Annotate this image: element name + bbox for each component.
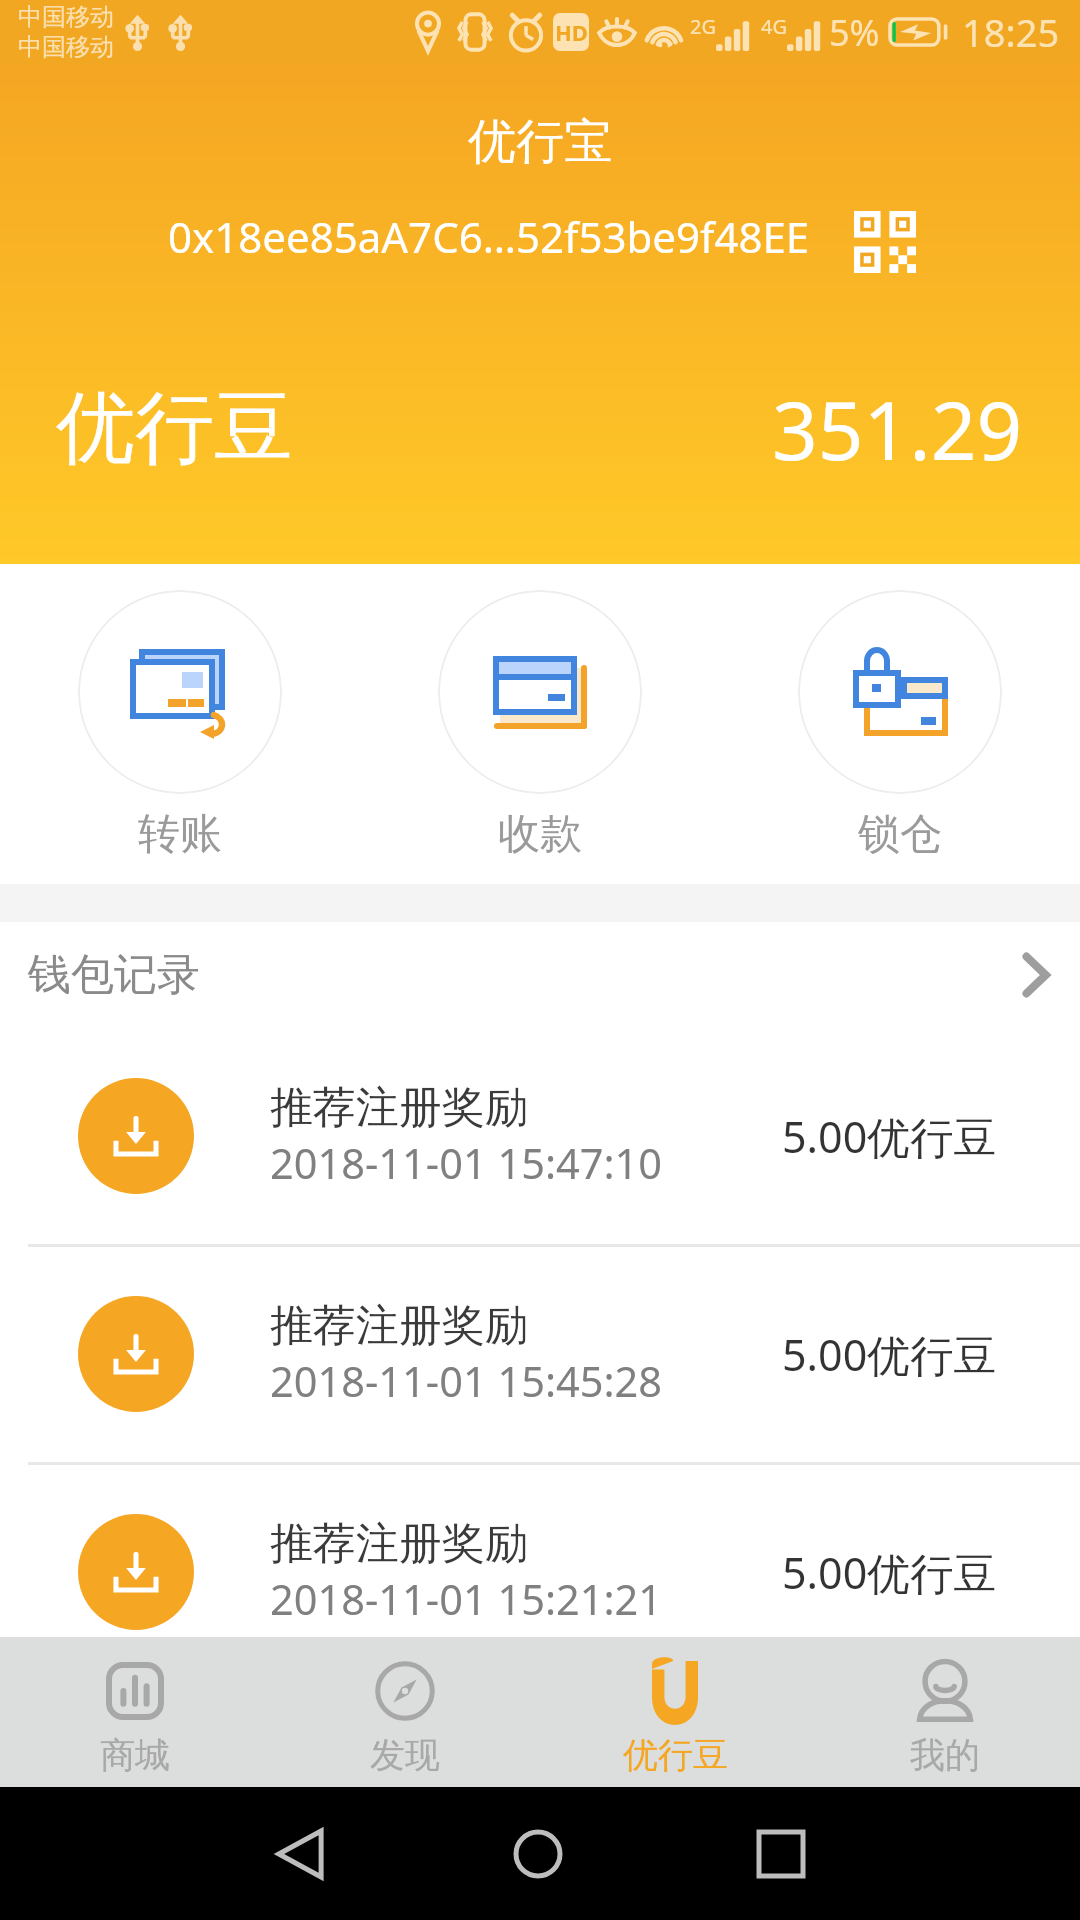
staticText: 5% (829, 8, 880, 57)
button[interactable]: 我的 (810, 1637, 1080, 1787)
staticText: 2018-11-01 15:45:28 (270, 1353, 663, 1410)
staticText: 锁仓 (858, 808, 942, 861)
staticText: 收款 (498, 808, 582, 861)
staticText: 钱包记录 (28, 948, 200, 1002)
staticText: 中国移动 (18, 32, 114, 62)
button[interactable]: 推荐注册奖励 (0, 1463, 1080, 1681)
button[interactable]: 推荐注册奖励 (0, 1027, 1080, 1245)
button[interactable]: Home (478, 1787, 598, 1920)
staticText: 推荐注册奖励 (270, 1081, 528, 1135)
staticText: 18:25 (962, 6, 1060, 58)
button[interactable]: Recents (721, 1787, 841, 1920)
button[interactable]: 钱包记录 (0, 922, 1080, 1027)
button[interactable]: 转账 (0, 564, 360, 884)
staticText: 351.29 (772, 374, 1023, 483)
staticText: 5.00优行豆 (782, 1107, 997, 1166)
button[interactable]: Scan QR code (852, 209, 918, 275)
button[interactable]: 推荐注册奖励 (0, 1245, 1080, 1463)
staticText: 5.00优行豆 (782, 1543, 997, 1602)
staticText: 转账 (138, 808, 222, 861)
button[interactable]: 锁仓 (720, 564, 1080, 884)
staticText: 中国移动 (18, 2, 114, 32)
staticText: 推荐注册奖励 (270, 1517, 528, 1571)
button[interactable]: Back (240, 1787, 360, 1920)
button[interactable]: 收款 (360, 564, 720, 884)
staticText: 优行豆 (56, 379, 293, 479)
button[interactable]: 商城 (0, 1637, 270, 1787)
staticText: 0x18ee85aA7C6…52f53be9f48EE (168, 208, 810, 265)
staticText: 2018-11-01 15:47:10 (270, 1135, 663, 1192)
staticText: 发现 (370, 1733, 440, 1777)
staticText: 4G (761, 13, 787, 40)
staticText: 优行宝 (468, 112, 612, 172)
staticText: 2018-11-01 15:21:21 (270, 1571, 663, 1628)
staticText: 优行豆 (623, 1733, 728, 1777)
button[interactable]: 优行豆 (540, 1637, 810, 1787)
staticText: 2G (690, 13, 716, 40)
staticText: 我的 (910, 1733, 980, 1777)
staticText: 商城 (100, 1733, 170, 1777)
button[interactable]: 发现 (270, 1637, 540, 1787)
staticText: 推荐注册奖励 (270, 1299, 528, 1353)
staticText: 5.00优行豆 (782, 1325, 997, 1384)
staticText: HD (555, 17, 588, 47)
